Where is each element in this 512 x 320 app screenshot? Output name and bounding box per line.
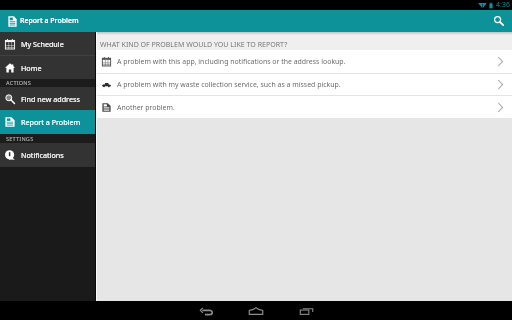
button[interactable]: Home [231,301,281,320]
button[interactable]: A problem with my waste collection servi… [97,74,512,95]
button[interactable]: Another problem. [97,96,512,118]
button[interactable]: Search [491,13,507,29]
staticText: Another problem. [117,103,498,112]
staticText: Report a Problem [21,117,81,127]
button[interactable]: Report a Problem [0,110,95,134]
staticText: WHAT KIND OF PROBLEM WOULD YOU LIKE TO R… [100,39,288,49]
staticText: Notifications [21,150,64,160]
staticText: SETTINGS [6,135,34,143]
button[interactable]: Recent apps [281,301,331,320]
staticText: ACTIONS [6,79,32,87]
staticText: 4:36 [496,0,510,10]
button[interactable]: Home [0,56,95,79]
button[interactable]: A problem with this app, including notif… [97,50,512,73]
button[interactable]: Back [181,301,231,320]
staticText: Report a Problem [20,16,79,26]
button[interactable]: Find new address [0,87,95,110]
staticText: My Schedule [21,39,64,49]
button[interactable]: My Schedule [0,32,95,55]
staticText: A problem with this app, including notif… [117,57,498,66]
button[interactable]: Notifications [0,143,95,167]
staticText: Home [21,63,42,73]
staticText: Find new address [21,94,80,104]
staticText: A problem with my waste collection servi… [117,80,498,89]
